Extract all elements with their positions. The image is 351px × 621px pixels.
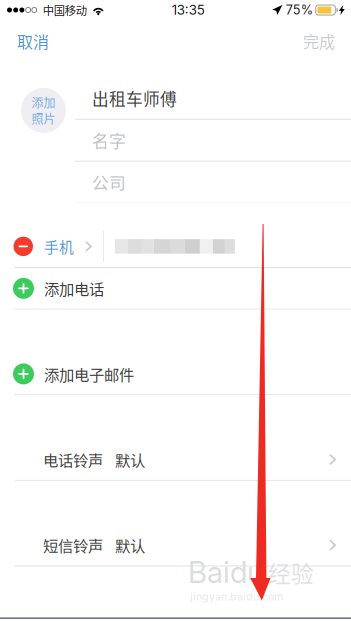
staticText: 出租车师傅 (92, 86, 177, 110)
staticText: 75% (286, 2, 313, 18)
staticText: 添加 (31, 93, 55, 111)
staticText: 中国移动 (43, 2, 87, 18)
button[interactable]: 公司 (75, 162, 351, 203)
staticText: 经验 (268, 556, 314, 589)
staticText: 手机 (44, 236, 74, 257)
button[interactable]: 添加电话 (0, 268, 351, 309)
staticText: Baidu (188, 555, 264, 590)
button[interactable]: 添加 (21, 88, 66, 133)
staticText: 13:35 (172, 2, 205, 18)
button[interactable]: 添加电子邮件 (0, 354, 351, 394)
staticText: 添加电话 (44, 277, 104, 299)
staticText: 默认 (115, 534, 145, 556)
staticText: 短信铃声 (43, 534, 103, 556)
staticText: 添加电子邮件 (44, 363, 134, 385)
button[interactable]: 手机 (0, 226, 351, 267)
button[interactable]: 取消 (0, 20, 63, 62)
staticText: 名字 (92, 128, 126, 152)
staticText: 取消 (17, 29, 49, 53)
staticText: jingyan.baidu.com (190, 590, 283, 603)
staticText: 完成 (303, 29, 335, 53)
button[interactable]: 出租车师傅 (75, 78, 351, 119)
button[interactable]: 短信铃声 (0, 525, 351, 565)
button[interactable]: 完成 (289, 20, 351, 62)
button[interactable]: 电话铃声 (0, 439, 351, 480)
button[interactable]: 名字 (75, 120, 351, 161)
staticText: 默认 (115, 448, 145, 471)
staticText: 电话铃声 (43, 448, 103, 471)
staticText: 照片 (31, 110, 55, 127)
staticText: 公司 (92, 170, 126, 194)
